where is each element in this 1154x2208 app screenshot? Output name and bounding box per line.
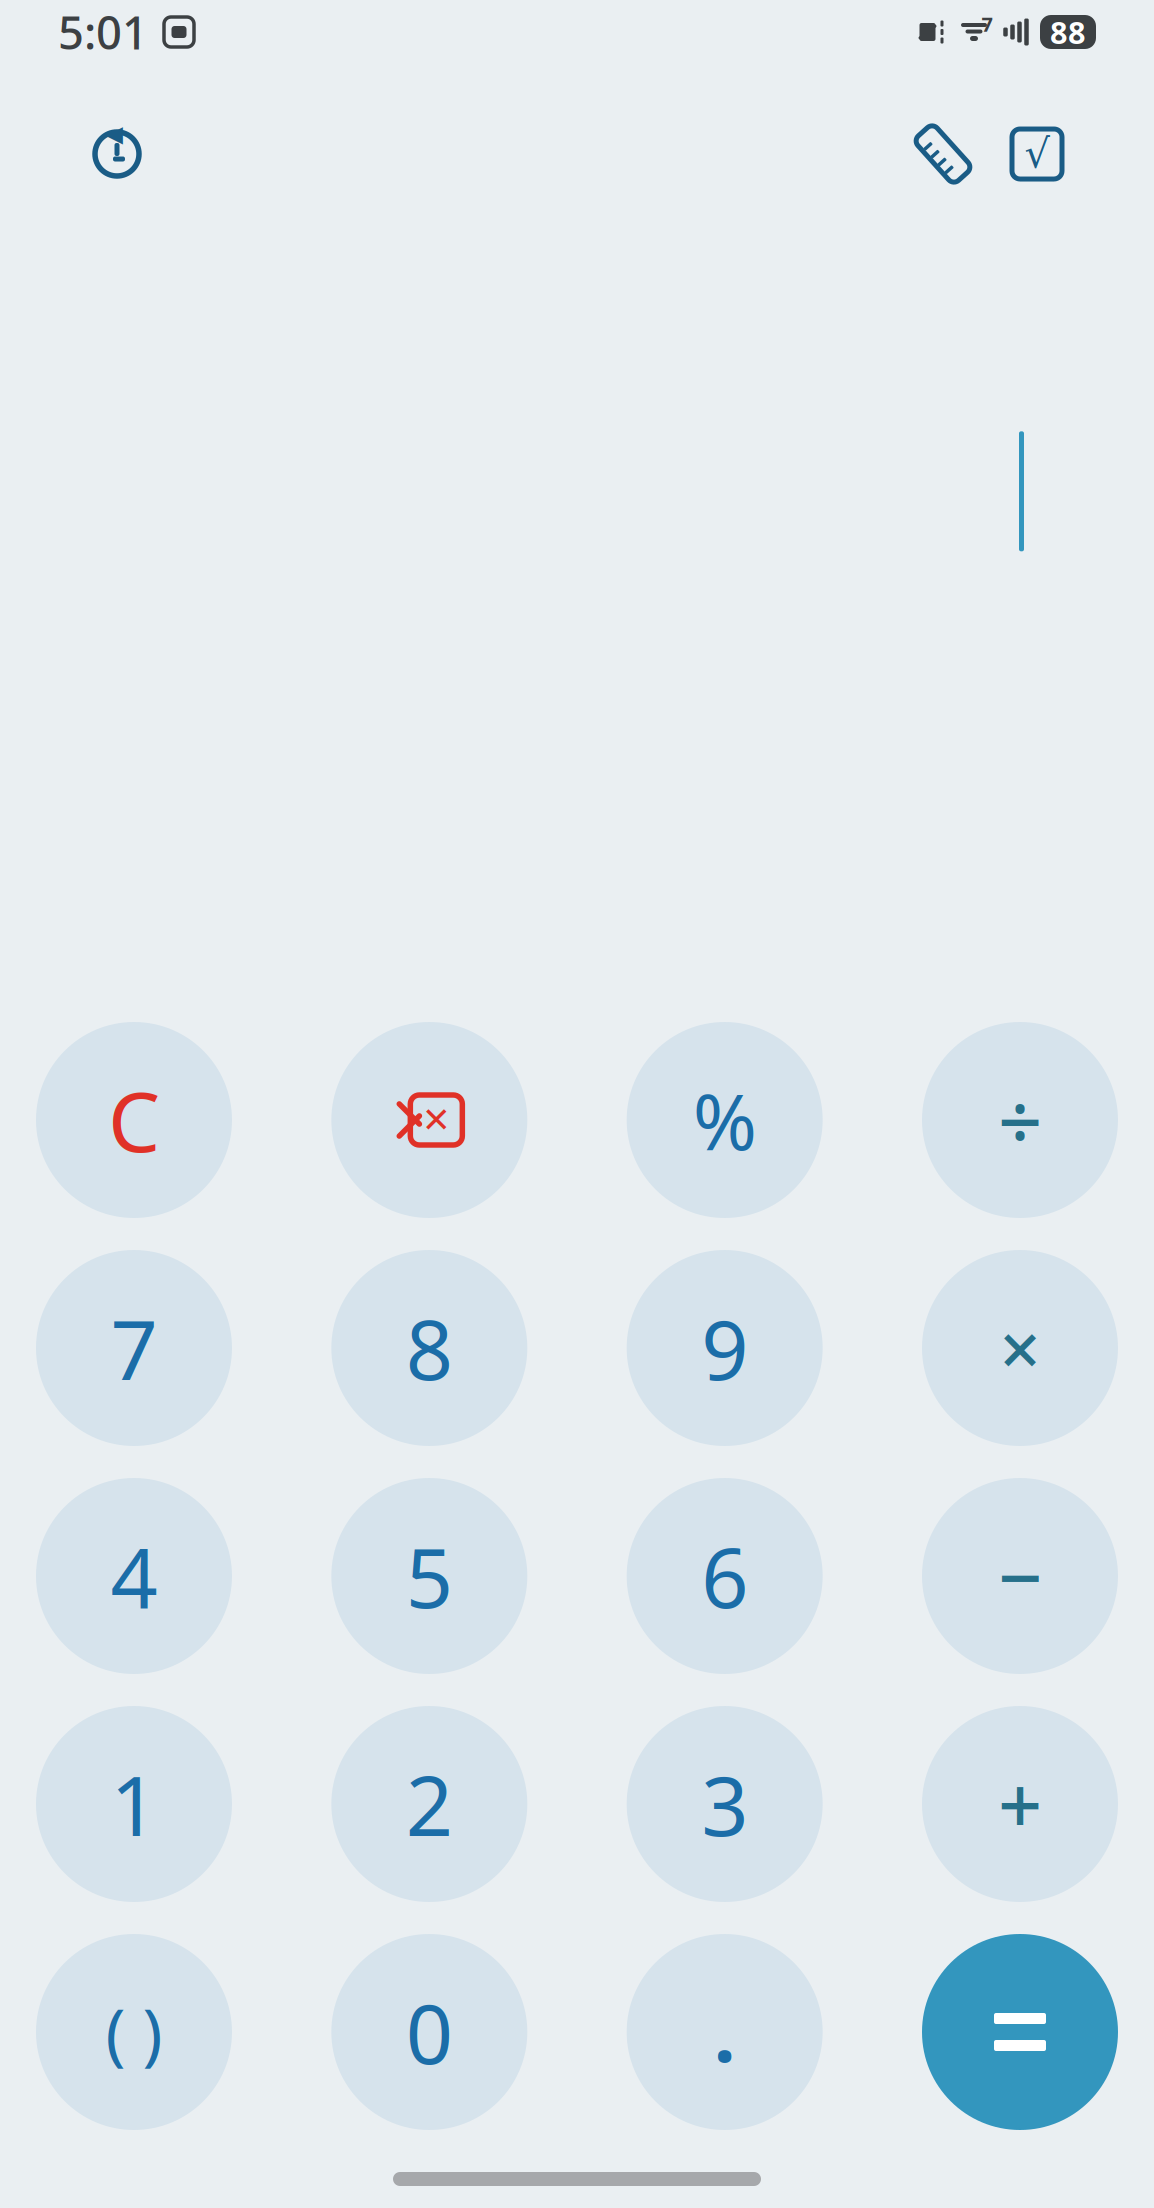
staticText: 5 [406, 1521, 453, 1631]
button[interactable]: ( ) [20, 1918, 248, 2146]
staticText: 2 [406, 1749, 453, 1859]
staticText: − [998, 1525, 1042, 1627]
button[interactable]: × [906, 1234, 1134, 1462]
button[interactable]: Scientific calculator [998, 115, 1076, 193]
staticText: ✕ [422, 1100, 451, 1140]
staticText: 6 [701, 1521, 748, 1631]
button[interactable]: 8 [315, 1234, 543, 1462]
button[interactable]: Unit converter [904, 115, 982, 193]
staticText: ◀ [105, 121, 122, 147]
button[interactable]: C [20, 1006, 248, 1234]
staticText: 5:01 [58, 2, 148, 62]
staticText: ( ) [105, 1988, 162, 2076]
button[interactable]: + [906, 1690, 1134, 1918]
button[interactable]: 6 [611, 1462, 839, 1690]
staticText: 8 [406, 1293, 453, 1403]
staticText: C [108, 1065, 160, 1175]
staticText: 88 [1050, 12, 1086, 52]
staticText: % [693, 1069, 757, 1171]
button[interactable]: 5 [315, 1462, 543, 1690]
staticText: 4 [110, 1521, 157, 1631]
staticText: + [998, 1753, 1042, 1855]
button[interactable]: 9 [611, 1234, 839, 1462]
button[interactable]: Equals [906, 1918, 1134, 2146]
button[interactable]: Backspace [315, 1006, 543, 1234]
button[interactable]: History [78, 115, 156, 193]
staticText: √ [1024, 131, 1049, 177]
button[interactable]: 0 [315, 1918, 543, 2146]
staticText: 7 [110, 1293, 157, 1403]
staticText: 1 [110, 1749, 157, 1859]
button[interactable]: 4 [20, 1462, 248, 1690]
button[interactable]: 1 [20, 1690, 248, 1918]
button[interactable]: 7 [20, 1234, 248, 1462]
staticText: 9 [701, 1293, 748, 1403]
button[interactable]: − [906, 1462, 1134, 1690]
button[interactable]: % [611, 1006, 839, 1234]
staticText: 0 [406, 1977, 453, 2087]
staticText: 3 [701, 1749, 748, 1859]
staticText: × [999, 1300, 1040, 1396]
button[interactable]: 2 [315, 1690, 543, 1918]
button[interactable]: ÷ [906, 1006, 1134, 1234]
staticText: 7 [981, 11, 992, 37]
button[interactable]: . [611, 1918, 839, 2146]
button[interactable]: 3 [611, 1690, 839, 1918]
staticText: ÷ [998, 1069, 1042, 1171]
staticText: . [714, 1981, 736, 2083]
